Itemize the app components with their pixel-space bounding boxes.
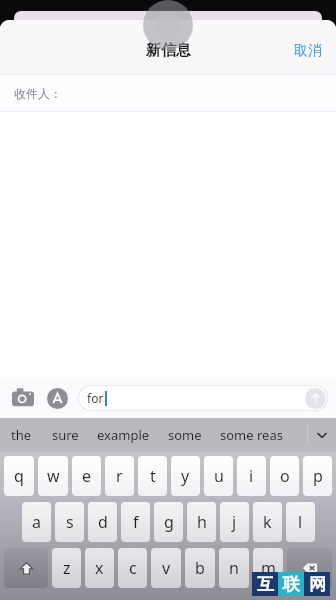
- button[interactable]: i: [237, 456, 266, 496]
- staticText: k: [263, 511, 272, 533]
- button[interactable]: a: [22, 502, 51, 542]
- button[interactable]: some reas: [211, 418, 292, 452]
- button[interactable]: z: [52, 548, 81, 588]
- button[interactable]: s: [55, 502, 84, 542]
- staticText: v: [162, 557, 171, 579]
- button[interactable]: p: [303, 456, 332, 496]
- button[interactable]: r: [105, 456, 134, 496]
- button[interactable]: d: [88, 502, 117, 542]
- staticText: p: [313, 465, 323, 487]
- button[interactable]: Backspace: [287, 548, 332, 588]
- button[interactable]: Shift: [4, 548, 48, 588]
- staticText: some reas: [220, 426, 283, 444]
- button[interactable]: sure: [43, 418, 88, 452]
- button[interactable]: f: [121, 502, 150, 542]
- staticText: sure: [52, 426, 79, 444]
- button[interactable]: m: [253, 548, 283, 588]
- staticText: f: [133, 511, 139, 533]
- staticText: m: [261, 557, 276, 579]
- staticText: i: [249, 465, 254, 487]
- staticText: z: [63, 557, 71, 579]
- button[interactable]: App Store: [42, 383, 72, 413]
- staticText: j: [232, 511, 237, 533]
- staticText: s: [66, 511, 74, 533]
- staticText: u: [214, 465, 224, 487]
- staticText: 互: [257, 574, 274, 595]
- button[interactable]: l: [286, 502, 315, 542]
- staticText: h: [197, 511, 207, 533]
- button[interactable]: v: [151, 548, 181, 588]
- button[interactable]: w: [38, 456, 68, 496]
- button[interactable]: g: [154, 502, 183, 542]
- staticText: for: [87, 390, 104, 406]
- button[interactable]: 收件人：: [0, 75, 336, 112]
- button[interactable]: q: [4, 456, 34, 496]
- staticText: 收件人：: [14, 86, 62, 101]
- staticText: w: [47, 465, 60, 487]
- button[interactable]: n: [219, 548, 249, 588]
- button[interactable]: Collapse suggestions: [308, 418, 336, 452]
- staticText: example: [97, 426, 150, 444]
- staticText: 网: [309, 574, 326, 595]
- staticText: r: [116, 465, 123, 487]
- button[interactable]: k: [253, 502, 282, 542]
- button[interactable]: h: [187, 502, 216, 542]
- staticText: 新信息: [146, 41, 191, 60]
- button[interactable]: t: [138, 456, 167, 496]
- button[interactable]: c: [118, 548, 147, 588]
- staticText: the: [11, 426, 32, 444]
- button[interactable]: x: [85, 548, 114, 588]
- staticText: y: [181, 465, 190, 487]
- staticText: 取消: [294, 42, 322, 60]
- button[interactable]: Camera: [8, 383, 38, 413]
- staticText: o: [280, 465, 290, 487]
- staticText: a: [32, 511, 41, 533]
- staticText: d: [98, 511, 108, 533]
- staticText: t: [150, 465, 156, 487]
- button[interactable]: 取消: [280, 34, 336, 68]
- staticText: x: [95, 557, 104, 579]
- staticText: b: [195, 557, 205, 579]
- button[interactable]: Send: [305, 388, 326, 409]
- button[interactable]: y: [171, 456, 200, 496]
- staticText: some: [168, 426, 202, 444]
- staticText: l: [298, 511, 303, 533]
- staticText: q: [14, 465, 24, 487]
- button[interactable]: example: [88, 418, 159, 452]
- button[interactable]: some: [159, 418, 211, 452]
- button[interactable]: for: [78, 385, 328, 411]
- staticText: g: [164, 511, 174, 533]
- staticText: n: [229, 557, 239, 579]
- button[interactable]: j: [220, 502, 249, 542]
- button[interactable]: o: [270, 456, 299, 496]
- button[interactable]: b: [185, 548, 215, 588]
- staticText: 联: [283, 574, 300, 595]
- button[interactable]: e: [72, 456, 101, 496]
- button[interactable]: u: [204, 456, 233, 496]
- staticText: e: [82, 465, 92, 487]
- button[interactable]: the: [0, 418, 43, 452]
- staticText: c: [129, 557, 137, 579]
